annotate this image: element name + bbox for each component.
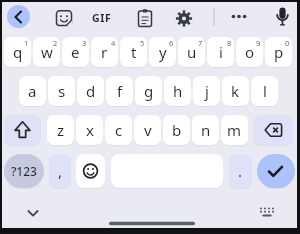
button[interactable] bbox=[225, 4, 253, 31]
button[interactable]: b bbox=[163, 115, 190, 145]
staticText: m bbox=[227, 120, 242, 140]
button[interactable]: m bbox=[221, 115, 248, 145]
button[interactable] bbox=[268, 4, 296, 31]
staticText: c bbox=[115, 120, 123, 140]
button[interactable] bbox=[76, 154, 105, 188]
staticText: x bbox=[86, 120, 94, 140]
button[interactable]: a bbox=[19, 76, 46, 106]
staticText: r bbox=[101, 42, 108, 62]
staticText: 6 bbox=[169, 38, 174, 48]
staticText: p bbox=[274, 42, 284, 62]
staticText: 1 bbox=[24, 38, 29, 48]
staticText: t bbox=[131, 42, 137, 62]
button[interactable]: g bbox=[135, 76, 162, 106]
button[interactable]: y bbox=[149, 37, 176, 67]
button[interactable] bbox=[170, 4, 198, 31]
button[interactable]: s bbox=[48, 76, 75, 106]
button[interactable]: l bbox=[251, 76, 278, 106]
button[interactable]: j bbox=[193, 76, 220, 106]
staticText: y bbox=[159, 42, 167, 62]
button[interactable]: q bbox=[4, 37, 31, 67]
button[interactable] bbox=[253, 115, 294, 145]
staticText: i bbox=[219, 42, 223, 62]
staticText: u bbox=[187, 42, 197, 62]
staticText: w bbox=[41, 42, 53, 62]
button[interactable]: u bbox=[178, 37, 205, 67]
staticText: n bbox=[201, 120, 211, 140]
button[interactable]: w bbox=[33, 37, 60, 67]
button[interactable]: i bbox=[207, 37, 234, 67]
button[interactable]: p bbox=[265, 37, 292, 67]
button[interactable]: x bbox=[76, 115, 103, 145]
staticText: GIF bbox=[92, 11, 112, 25]
button[interactable] bbox=[131, 4, 159, 31]
staticText: . bbox=[238, 161, 243, 181]
staticText: v bbox=[144, 120, 152, 140]
button[interactable]: ?123 bbox=[4, 154, 44, 188]
button[interactable] bbox=[7, 5, 30, 28]
staticText: k bbox=[231, 81, 240, 101]
button[interactable]: GIF bbox=[88, 4, 116, 31]
staticText: b bbox=[172, 120, 182, 140]
button[interactable]: n bbox=[192, 115, 219, 145]
button[interactable] bbox=[22, 203, 44, 223]
button[interactable] bbox=[257, 154, 295, 188]
staticText: 9 bbox=[256, 38, 261, 48]
staticText: 8 bbox=[227, 38, 232, 48]
staticText: 3 bbox=[82, 38, 87, 48]
button[interactable]: k bbox=[222, 76, 249, 106]
button[interactable] bbox=[4, 115, 41, 145]
button[interactable]: . bbox=[229, 154, 252, 188]
button[interactable] bbox=[105, 217, 199, 230]
staticText: ?123 bbox=[11, 163, 37, 179]
staticText: 4 bbox=[111, 38, 116, 48]
staticText: 2 bbox=[53, 38, 58, 48]
staticText: z bbox=[57, 120, 65, 140]
button[interactable] bbox=[255, 203, 279, 223]
staticText: d bbox=[86, 81, 96, 101]
staticText: j bbox=[205, 81, 209, 101]
staticText: e bbox=[71, 42, 80, 62]
staticText: 5 bbox=[140, 38, 145, 48]
button[interactable]: v bbox=[134, 115, 161, 145]
staticText: 0 bbox=[285, 38, 290, 48]
staticText: f bbox=[117, 81, 123, 101]
button[interactable]: r bbox=[91, 37, 118, 67]
button[interactable] bbox=[50, 4, 78, 31]
button[interactable]: t bbox=[120, 37, 147, 67]
button[interactable]: o bbox=[236, 37, 263, 67]
staticText: 7 bbox=[198, 38, 203, 48]
staticText: l bbox=[263, 81, 267, 101]
staticText: s bbox=[58, 81, 66, 101]
button[interactable]: , bbox=[49, 154, 71, 188]
staticText: , bbox=[58, 161, 63, 181]
staticText: h bbox=[173, 81, 183, 101]
staticText: g bbox=[144, 81, 154, 101]
button[interactable]: f bbox=[106, 76, 133, 106]
button[interactable]: z bbox=[47, 115, 74, 145]
staticText: q bbox=[13, 42, 23, 62]
staticText: a bbox=[28, 81, 37, 101]
staticText: o bbox=[245, 42, 255, 62]
button[interactable]: d bbox=[77, 76, 104, 106]
button[interactable]: e bbox=[62, 37, 89, 67]
button[interactable]: c bbox=[105, 115, 132, 145]
button[interactable]: h bbox=[164, 76, 191, 106]
